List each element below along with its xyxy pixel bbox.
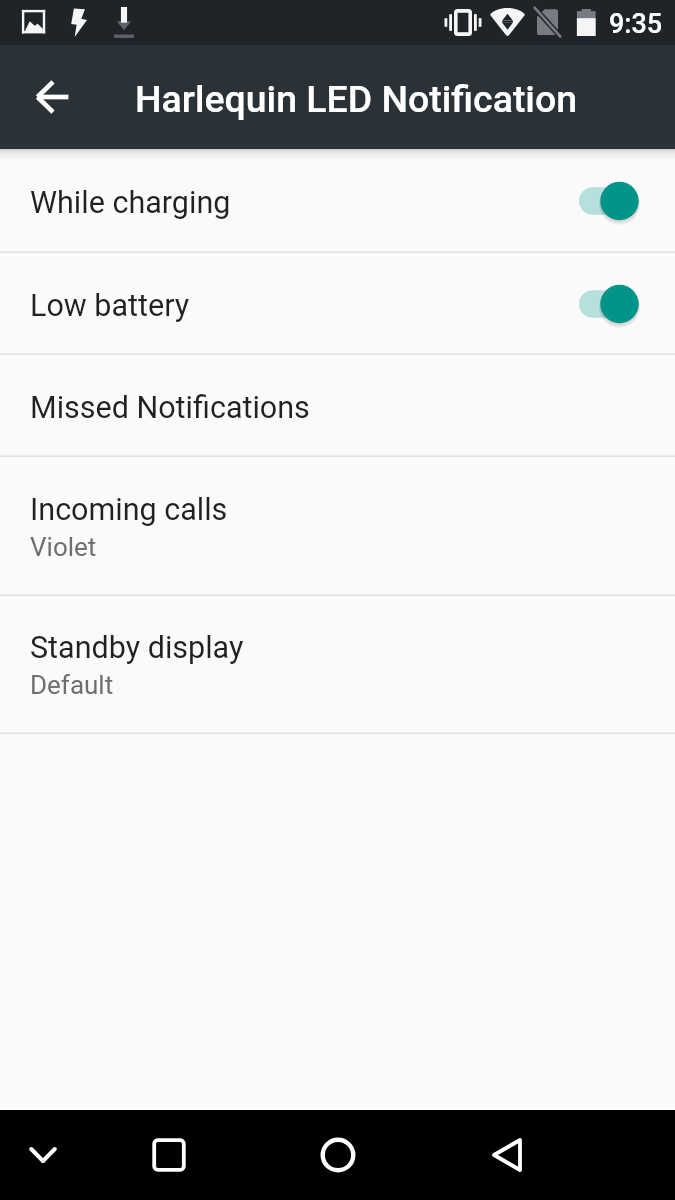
staticText: Low battery (30, 288, 579, 324)
button[interactable]: Low battery (0, 253, 675, 355)
button[interactable]: Home (308, 1125, 368, 1185)
button[interactable]: While charging (0, 149, 675, 253)
staticText: Harlequin LED Notification (135, 77, 577, 121)
staticText: Violet (30, 532, 97, 562)
staticText: 9:35 (609, 8, 663, 40)
staticText: Incoming calls (30, 492, 228, 528)
button[interactable]: Back (23, 67, 83, 127)
button[interactable]: Standby display (0, 596, 675, 734)
staticText: Missed Notifications (30, 390, 310, 426)
staticText: While charging (30, 185, 579, 221)
button[interactable]: Recents (139, 1125, 199, 1185)
button[interactable]: Back (477, 1125, 537, 1185)
staticText: Default (30, 670, 114, 700)
button[interactable]: Incoming calls (0, 457, 675, 596)
button[interactable]: Missed Notifications (0, 355, 675, 457)
button[interactable]: Hide keyboard (13, 1125, 73, 1185)
staticText: Standby display (30, 630, 244, 666)
